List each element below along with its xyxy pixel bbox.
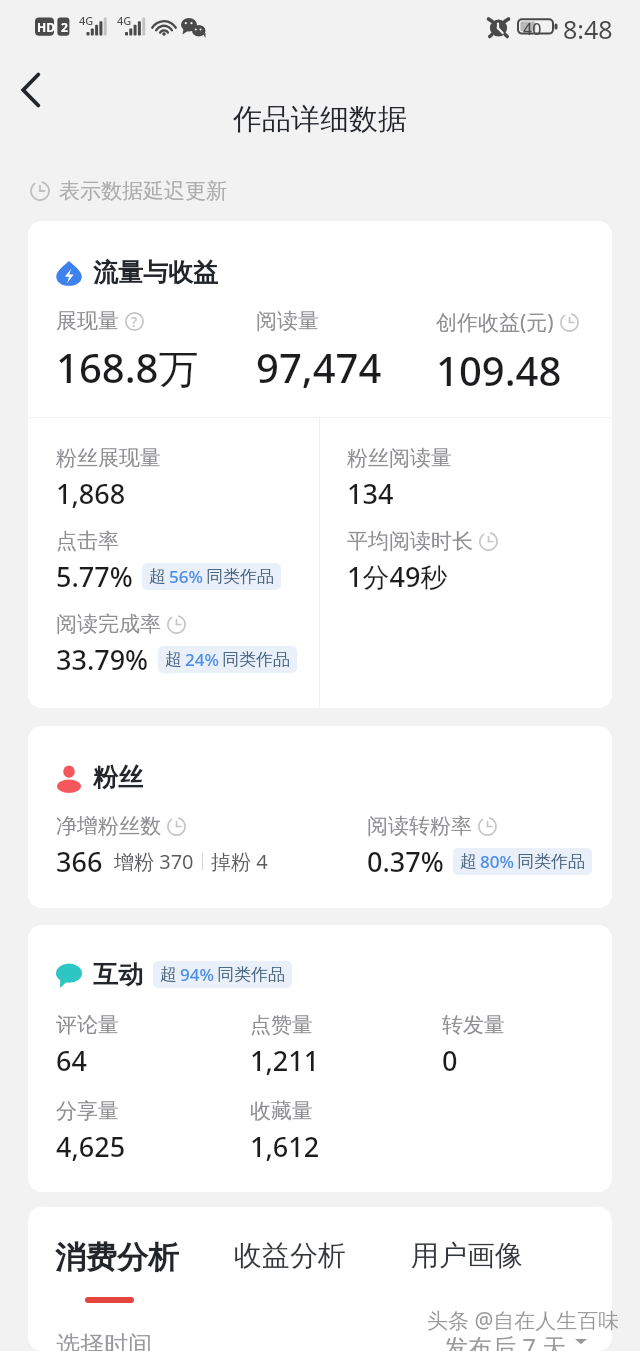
- staticText: 同类作品: [517, 851, 585, 872]
- staticText: 1分49秒: [347, 558, 448, 595]
- staticText: 净增粉丝数: [56, 813, 161, 839]
- staticText: 收藏量: [250, 1098, 313, 1124]
- staticText: 阅读量: [256, 308, 319, 334]
- staticText: 分享量: [56, 1098, 119, 1124]
- staticText: 80%: [480, 850, 514, 873]
- staticText: 评论量: [56, 1012, 119, 1038]
- staticText: 超: [160, 964, 177, 985]
- staticText: 头条 @自在人生百味: [427, 1306, 620, 1335]
- staticText: 点赞量: [250, 1012, 313, 1038]
- staticText: 1,211: [250, 1042, 320, 1079]
- staticText: 粉丝展现量: [56, 445, 161, 471]
- staticText: 0.37%: [367, 843, 444, 880]
- staticText: 56%: [169, 565, 203, 588]
- staticText: 阅读转粉率: [367, 813, 472, 839]
- staticText: 5.77%: [56, 558, 133, 595]
- staticText: 24%: [185, 648, 219, 671]
- staticText: 粉丝阅读量: [347, 445, 452, 471]
- button[interactable]: 用户画像: [411, 1238, 523, 1273]
- staticText: 流量与收益: [93, 257, 218, 288]
- staticText: ?: [131, 312, 138, 331]
- staticText: 168.8万: [56, 340, 199, 395]
- staticText: 点击率: [56, 528, 119, 554]
- staticText: 134: [347, 475, 394, 512]
- staticText: HD: [37, 19, 55, 35]
- staticText: 消费分析: [55, 1238, 179, 1277]
- staticText: 109.48: [436, 343, 562, 397]
- staticText: 2: [61, 19, 68, 35]
- button[interactable]: 发布后 7 天: [444, 1330, 587, 1351]
- staticText: 4,625: [56, 1128, 126, 1165]
- staticText: 作品详细数据: [233, 101, 407, 138]
- staticText: 同类作品: [217, 964, 285, 985]
- staticText: 平均阅读时长: [347, 528, 473, 554]
- staticText: 94%: [180, 963, 214, 986]
- staticText: 超: [460, 851, 477, 872]
- staticText: 粉丝: [93, 762, 143, 793]
- staticText: 366: [56, 843, 103, 880]
- staticText: 40: [523, 18, 542, 40]
- staticText: 超: [149, 566, 166, 587]
- staticText: 发布后 7 天: [444, 1330, 567, 1351]
- staticText: 转发量: [442, 1012, 505, 1038]
- staticText: 展现量: [56, 308, 119, 334]
- staticText: 1,868: [56, 475, 126, 512]
- staticText: 同类作品: [206, 566, 274, 587]
- staticText: 97,474: [256, 340, 382, 394]
- staticText: 33.79%: [56, 641, 149, 678]
- staticText: 选择时间: [56, 1330, 152, 1351]
- staticText: 掉粉 4: [211, 848, 268, 875]
- button[interactable]: 消费分析: [55, 1238, 179, 1303]
- button[interactable]: Back: [6, 62, 62, 118]
- staticText: 4G: [117, 13, 132, 28]
- staticText: 超: [165, 649, 182, 670]
- staticText: 1,612: [250, 1128, 320, 1165]
- staticText: 互动: [93, 959, 143, 990]
- staticText: 同类作品: [222, 649, 290, 670]
- button[interactable]: 收益分析: [234, 1238, 346, 1273]
- staticText: 0: [442, 1042, 458, 1079]
- staticText: 4G: [79, 13, 94, 28]
- staticText: 增粉 370: [114, 848, 194, 875]
- staticText: 表示数据延迟更新: [59, 178, 227, 204]
- staticText: 阅读完成率: [56, 611, 161, 637]
- staticText: 创作收益(元): [436, 308, 554, 337]
- staticText: 64: [56, 1042, 87, 1079]
- staticText: 8:48: [563, 12, 613, 46]
